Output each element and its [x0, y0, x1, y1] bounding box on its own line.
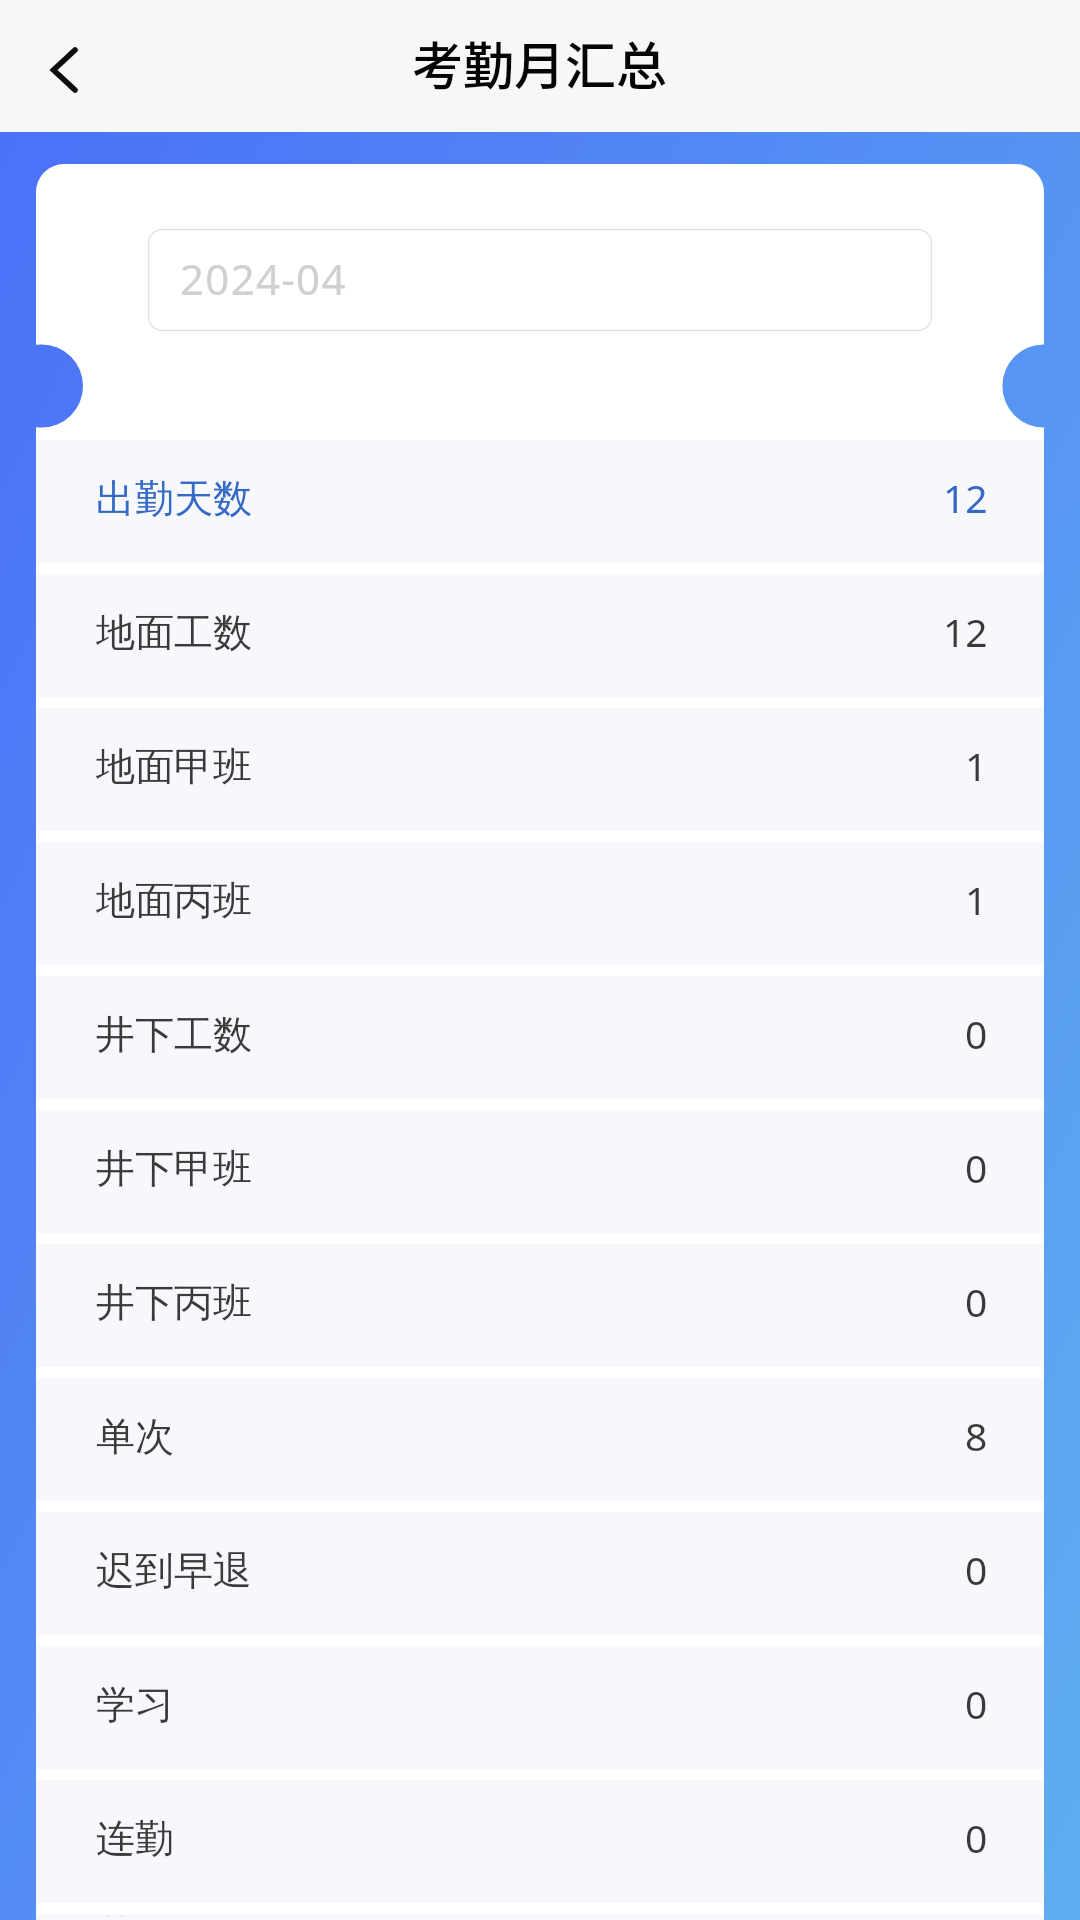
staticText: 井下甲班: [96, 1144, 252, 1193]
staticText: 井下工数: [96, 1010, 252, 1059]
button[interactable]: 学习: [36, 1646, 1044, 1769]
button[interactable]: 地面丙班: [36, 842, 1044, 965]
button[interactable]: 单次: [36, 1378, 1044, 1501]
staticText: 1: [965, 739, 988, 792]
staticText: 出勤天数: [96, 474, 252, 523]
staticText: 学习: [96, 1680, 174, 1729]
button[interactable]: 井下甲班: [36, 1110, 1044, 1233]
staticText: 其他: [96, 1911, 174, 1917]
staticText: 井下丙班: [96, 1278, 252, 1327]
button[interactable]: 地面工数: [36, 574, 1044, 697]
staticText: 0: [965, 1007, 988, 1060]
button[interactable]: 迟到早退: [36, 1512, 1044, 1635]
button[interactable]: 井下工数: [36, 976, 1044, 1099]
staticText: 地面丙班: [96, 876, 252, 925]
staticText: 0: [965, 1543, 988, 1596]
staticText: 0: [965, 1275, 988, 1328]
staticText: 0: [965, 1811, 988, 1864]
staticText: 连勤: [96, 1814, 174, 1863]
staticText: 2024-04: [180, 250, 347, 307]
staticText: 0: [965, 1910, 988, 1916]
staticText: 12: [943, 471, 988, 524]
staticText: 0: [965, 1677, 988, 1730]
staticText: 地面甲班: [96, 742, 252, 791]
button[interactable]: 2024-04: [148, 229, 932, 331]
staticText: 0: [965, 1141, 988, 1194]
button[interactable]: 出勤天数: [36, 440, 1044, 563]
button[interactable]: 连勤: [36, 1780, 1044, 1903]
staticText: 单次: [96, 1412, 174, 1461]
button[interactable]: 地面甲班: [36, 708, 1044, 831]
staticText: 8: [965, 1409, 988, 1462]
staticText: 迟到早退: [96, 1546, 252, 1595]
staticText: 1: [965, 873, 988, 926]
staticText: 地面工数: [96, 608, 252, 657]
button[interactable]: Back: [15, 22, 111, 118]
staticText: 考勤月汇总: [412, 26, 668, 100]
staticText: 12: [943, 605, 988, 658]
button[interactable]: 井下丙班: [36, 1244, 1044, 1367]
